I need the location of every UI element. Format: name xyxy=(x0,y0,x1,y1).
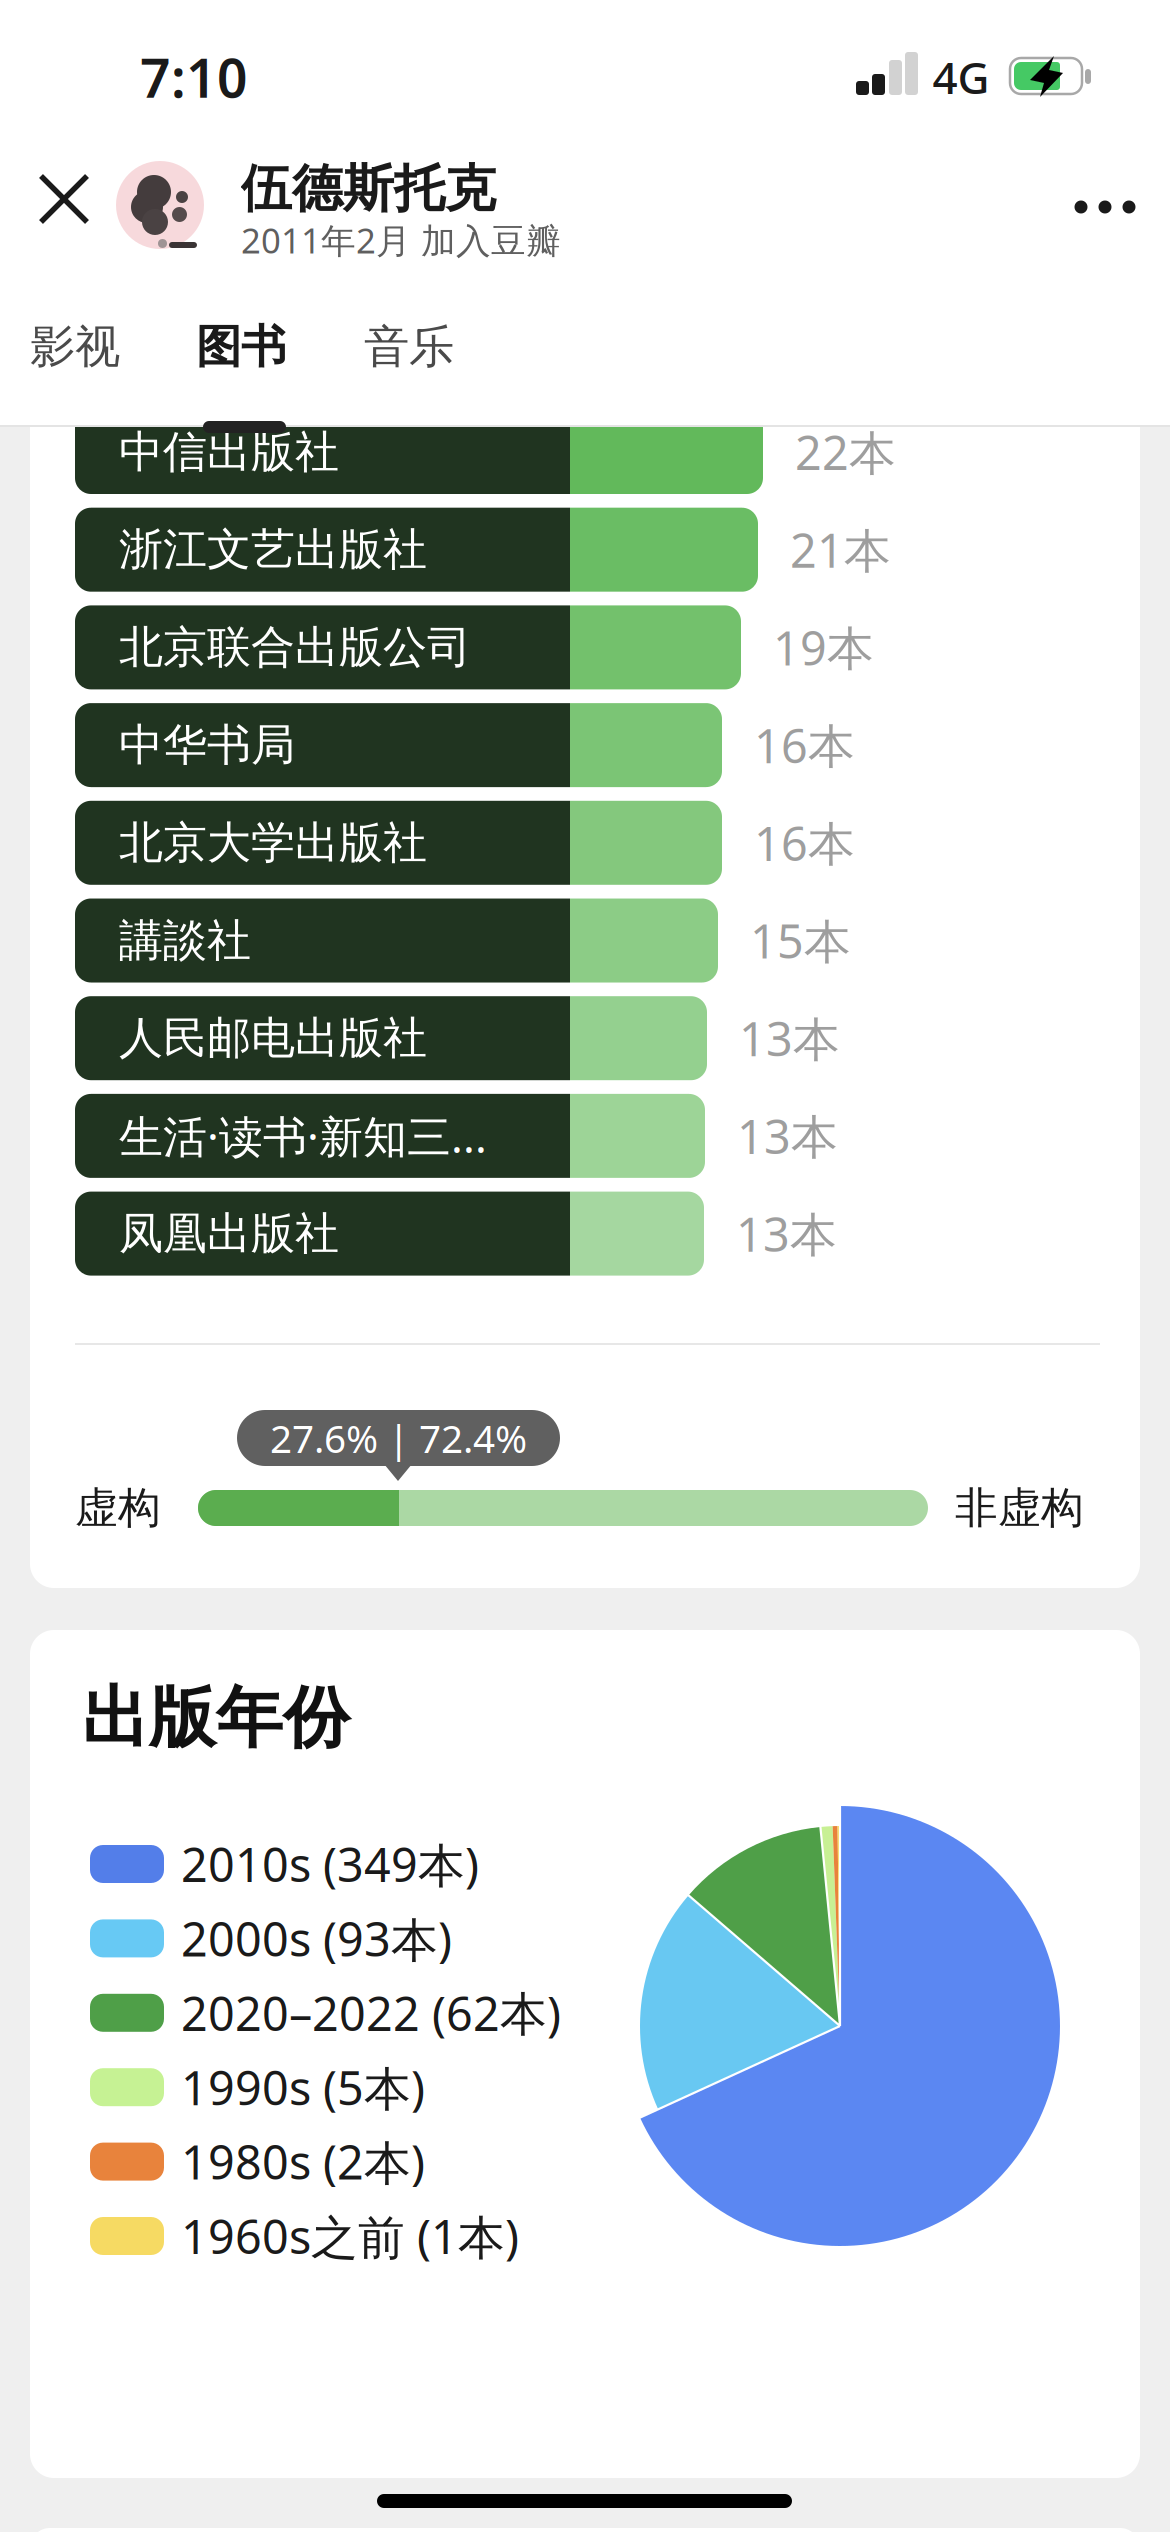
staticText: 中华书局 xyxy=(119,718,295,772)
staticText: 图书 xyxy=(196,319,286,375)
staticText: 出版年份 xyxy=(82,1677,350,1759)
staticText: 13本 xyxy=(737,1105,838,1167)
staticText: 27.6% | 72.4% xyxy=(270,1412,527,1464)
staticText: 虚构 xyxy=(75,1482,161,1534)
staticText: 2011年2月 加入豆瓣 xyxy=(241,217,561,263)
staticText: 13本 xyxy=(736,1203,837,1265)
staticText: 中信出版社 xyxy=(119,425,339,479)
button[interactable]: 图书 xyxy=(181,315,301,379)
staticText: 北京大学出版社 xyxy=(119,816,427,870)
staticText: 1960s之前 (1本) xyxy=(181,2205,519,2267)
button[interactable] xyxy=(1055,179,1155,235)
staticText: 非虚构 xyxy=(955,1482,1084,1534)
button[interactable]: 伍德斯托克 xyxy=(116,161,676,261)
staticText: 21本 xyxy=(790,519,891,581)
staticText: 1980s (2本) xyxy=(181,2130,425,2193)
staticText: 13本 xyxy=(739,1007,840,1069)
staticText: 生活·读书·新知三... xyxy=(119,1107,487,1165)
staticText: 北京联合出版公司 xyxy=(119,620,471,674)
button[interactable]: 影视 xyxy=(15,315,135,379)
staticText: 2020–2022 (62本) xyxy=(181,1982,561,2044)
staticText: 音乐 xyxy=(364,319,454,375)
staticText: 4G xyxy=(932,48,989,106)
staticText: 16本 xyxy=(754,714,855,776)
staticText: 1990s (5本) xyxy=(181,2056,425,2118)
button[interactable]: 音乐 xyxy=(349,315,469,379)
staticText: 16本 xyxy=(754,812,855,874)
staticText: 2010s (349本) xyxy=(181,1833,479,1895)
staticText: 伍德斯托克 xyxy=(241,158,496,220)
staticText: 19本 xyxy=(773,616,874,678)
staticText: 凤凰出版社 xyxy=(119,1207,339,1261)
button[interactable] xyxy=(32,167,96,231)
staticText: 7:10 xyxy=(140,42,248,112)
staticText: 人民邮电出版社 xyxy=(119,1011,427,1065)
staticText: 浙江文艺出版社 xyxy=(119,523,427,577)
staticText: 22本 xyxy=(795,421,896,483)
staticText: 2000s (93本) xyxy=(181,1907,452,1969)
staticText: 影视 xyxy=(30,319,120,375)
staticText: 15本 xyxy=(750,909,851,971)
staticText: 講談社 xyxy=(119,913,251,967)
